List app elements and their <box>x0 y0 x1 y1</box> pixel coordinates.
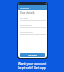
staticText: Phone number <box>20 31 33 33</box>
staticText: Continue <box>28 54 37 57</box>
staticText: Account <box>20 6 30 9</box>
staticText: Full name <box>20 17 29 19</box>
button[interactable]: Account <box>18 5 47 10</box>
staticText: Your details <box>20 11 35 15</box>
staticText: Want your account kept safe? Get app <box>0 62 64 70</box>
staticText: Email address <box>20 24 32 26</box>
button[interactable]: Continue <box>20 53 45 57</box>
